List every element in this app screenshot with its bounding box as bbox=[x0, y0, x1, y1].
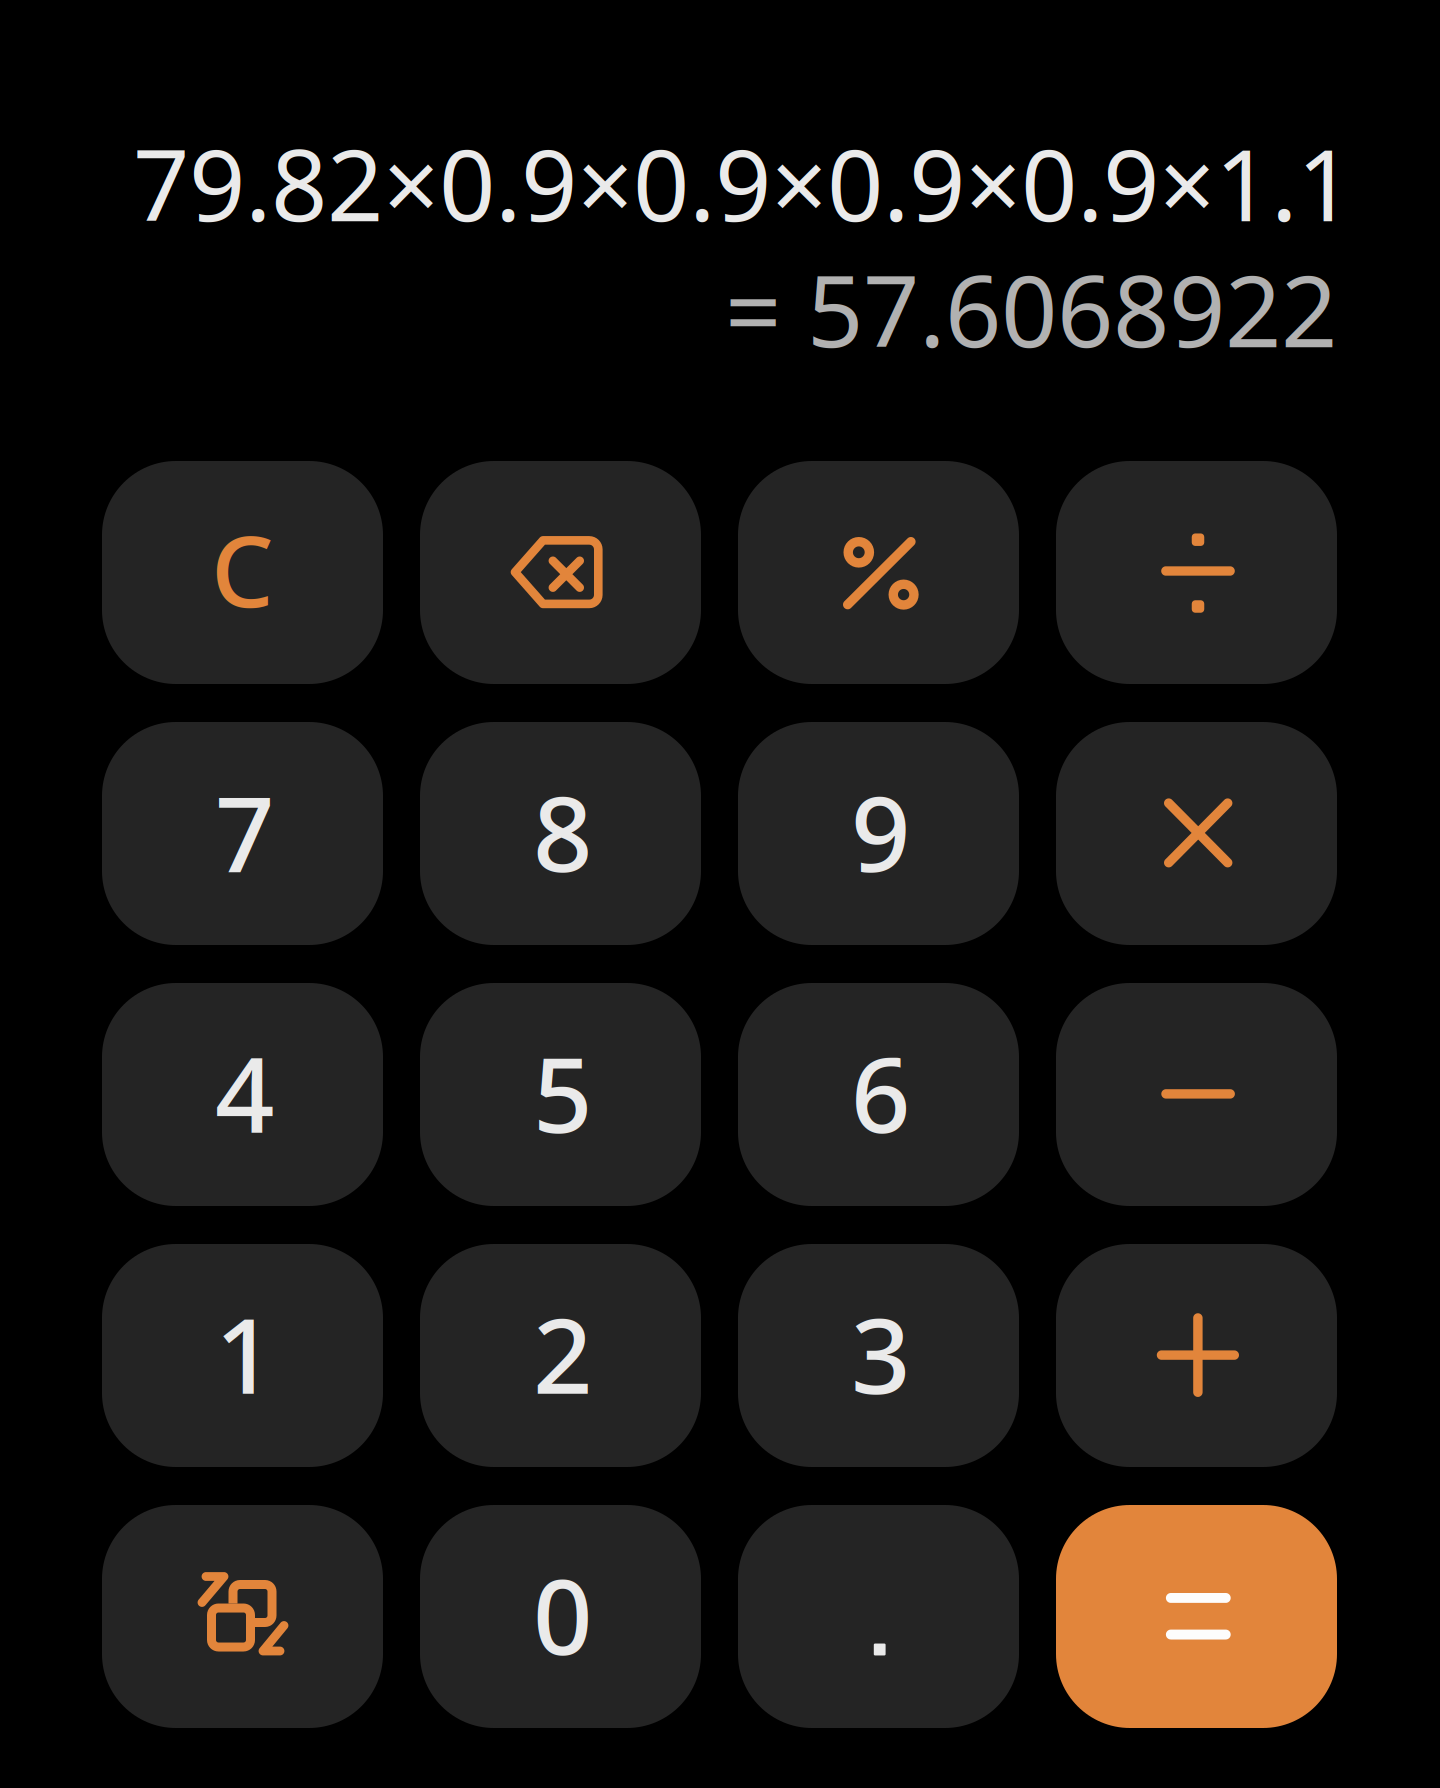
button[interactable]: 3 bbox=[738, 1244, 1019, 1467]
button[interactable]: Clear bbox=[102, 461, 383, 684]
button[interactable]: 2 bbox=[420, 1244, 701, 1467]
staticText: 5 bbox=[533, 1023, 592, 1161]
staticText: 4 bbox=[215, 1023, 274, 1161]
button[interactable]: Subtract bbox=[1056, 983, 1337, 1206]
staticText: 8 bbox=[533, 762, 592, 900]
staticText: 7 bbox=[215, 762, 274, 900]
staticText: = 57.6068922 bbox=[725, 243, 1337, 374]
button[interactable]: 9 bbox=[738, 722, 1019, 945]
staticText: 3 bbox=[851, 1284, 910, 1422]
button[interactable]: 4 bbox=[102, 983, 383, 1206]
staticText: 0 bbox=[533, 1545, 592, 1683]
staticText: C bbox=[211, 503, 274, 634]
button[interactable]: Convert units bbox=[102, 1505, 383, 1728]
button[interactable]: Equals bbox=[1056, 1505, 1337, 1728]
button[interactable]: 8 bbox=[420, 722, 701, 945]
staticText: 1 bbox=[215, 1284, 274, 1422]
button[interactable]: 7 bbox=[102, 722, 383, 945]
button[interactable]: Multiply bbox=[1056, 722, 1337, 945]
button[interactable]: 5 bbox=[420, 983, 701, 1206]
button[interactable]: 6 bbox=[738, 983, 1019, 1206]
staticText: 2 bbox=[533, 1284, 592, 1422]
staticText: 9 bbox=[851, 762, 910, 900]
button[interactable]: 0 bbox=[420, 1505, 701, 1728]
button[interactable]: Divide bbox=[1056, 461, 1337, 684]
button[interactable]: Add bbox=[1056, 1244, 1337, 1467]
staticText: 6 bbox=[851, 1023, 910, 1161]
button[interactable]: Percent bbox=[738, 461, 1019, 684]
button[interactable]: Decimal point bbox=[738, 1505, 1019, 1728]
button[interactable]: 1 bbox=[102, 1244, 383, 1467]
button[interactable]: Backspace bbox=[420, 461, 701, 684]
staticText: 79.82×0.9×0.9×0.9×0.9×1.1 bbox=[133, 117, 1353, 248]
